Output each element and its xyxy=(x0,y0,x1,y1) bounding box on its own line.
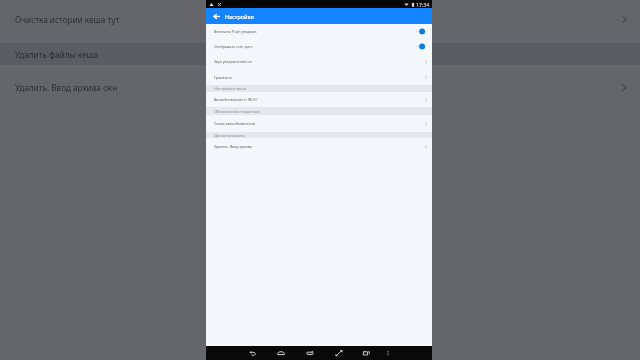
staticText: Отображать стат. дост. xyxy=(214,44,254,49)
staticText: Громкость xyxy=(214,75,233,80)
staticText: Звук уведомлений см xyxy=(214,59,252,64)
staticText: Очистка истории кеша тут xyxy=(15,14,120,25)
staticText: Автообновление (с Wi-Fi) xyxy=(214,97,258,102)
button[interactable]: Отображать стат. дост. xyxy=(206,39,432,54)
staticText: 17:34 xyxy=(416,1,430,8)
button[interactable]: Удалить. Ввод архива окн xyxy=(0,72,640,103)
button[interactable]: Back xyxy=(210,10,222,22)
staticText: Дополнительно xyxy=(214,133,245,138)
button[interactable]: Схема автообновлений xyxy=(206,115,432,132)
button[interactable]: More options xyxy=(381,346,395,360)
button[interactable]: Expand xyxy=(332,346,346,360)
button[interactable]: Удалить. Ввод архива xyxy=(206,138,432,155)
button[interactable]: Включить Push уведомл. xyxy=(206,24,432,39)
button[interactable]: Очистка истории кеша тут xyxy=(0,0,640,39)
staticText: Удалить файлы кеша xyxy=(15,49,99,60)
button[interactable]: Back xyxy=(246,346,260,360)
button[interactable]: Удалить файлы кеша xyxy=(0,43,640,65)
staticText: Схема автообновлений xyxy=(214,121,255,126)
button[interactable]: Звук уведомлений см xyxy=(206,54,432,69)
button[interactable]: Screenshot xyxy=(360,346,374,360)
staticText: Настройки кеша xyxy=(214,86,247,91)
button[interactable]: Громкость xyxy=(206,69,432,85)
staticText: Обновление геоданных xyxy=(214,109,261,114)
staticText: Настройки xyxy=(225,13,254,20)
staticText: Удалить. Ввод архива xyxy=(214,144,252,149)
staticText: Удалить. Ввод архива окн xyxy=(15,82,118,93)
staticText: Включить Push уведомл. xyxy=(214,29,258,34)
button[interactable]: Автообновление (с Wi-Fi) xyxy=(206,92,432,107)
button[interactable]: Recent apps xyxy=(303,346,317,360)
button[interactable]: Home xyxy=(274,346,288,360)
